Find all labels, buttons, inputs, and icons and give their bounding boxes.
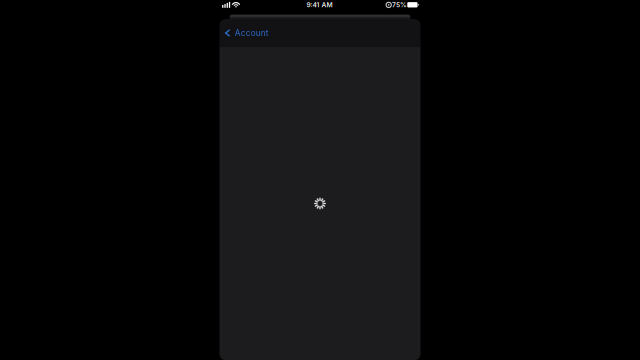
staticText: Account	[235, 28, 269, 38]
button[interactable]: Account	[219, 19, 277, 47]
staticText: 9:41 AM	[306, 1, 332, 9]
staticText: 75%	[392, 1, 407, 9]
